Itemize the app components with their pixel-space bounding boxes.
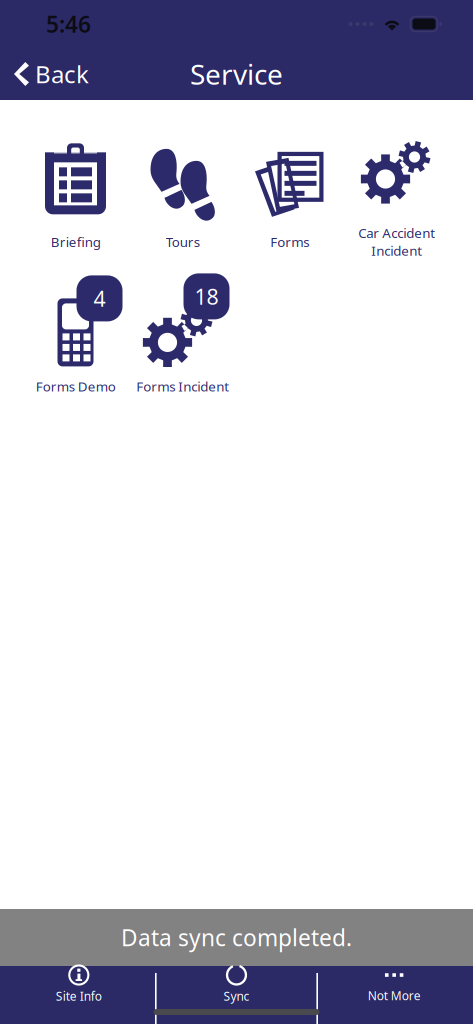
staticText: Forms Incident (136, 377, 229, 395)
staticText: 4 (93, 284, 105, 312)
staticText: Data sync completed. (121, 922, 352, 952)
staticText: Briefing (50, 233, 100, 251)
button[interactable]: Back (0, 49, 101, 99)
staticText: Forms Demo (35, 377, 115, 395)
staticText: Car Accident Incident (358, 224, 435, 259)
staticText: Sync (223, 988, 249, 1004)
button[interactable]: Sync (158, 963, 315, 1024)
staticText: Tours (165, 233, 199, 251)
button[interactable]: Not More (315, 963, 473, 1024)
button[interactable]: Briefing (22, 141, 129, 251)
staticText: Forms (270, 233, 309, 251)
staticText: Not More (368, 987, 421, 1003)
button[interactable]: Car Accident Incident (343, 132, 450, 259)
button[interactable]: Site Info (0, 963, 158, 1024)
button[interactable]: 18 (129, 285, 236, 395)
button[interactable]: Tours (129, 141, 236, 251)
staticText: 18 (194, 282, 218, 310)
button[interactable]: 4 (22, 285, 129, 395)
button[interactable]: Forms (236, 141, 343, 251)
staticText: Service (190, 55, 283, 93)
staticText: Back (35, 58, 89, 90)
staticText: Site Info (56, 988, 102, 1004)
staticText: 5:46 (46, 9, 91, 39)
